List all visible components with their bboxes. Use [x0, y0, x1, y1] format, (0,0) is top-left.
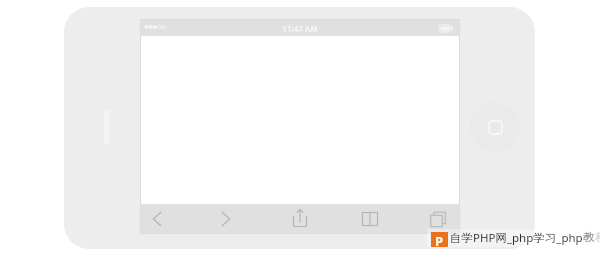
- staticText: P: [435, 232, 444, 247]
- staticText: 程: [595, 230, 600, 244]
- button[interactable]: Share: [284, 204, 316, 233]
- staticText: 11:47 AM: [282, 23, 318, 34]
- staticText: 教: [583, 230, 595, 244]
- staticText: 自学PHP网_php学习_php: [450, 230, 583, 246]
- button[interactable]: Back: [141, 204, 173, 233]
- button[interactable]: Forward: [210, 204, 242, 233]
- button[interactable]: Bookmarks: [354, 204, 386, 233]
- button[interactable]: Tabs: [422, 204, 454, 233]
